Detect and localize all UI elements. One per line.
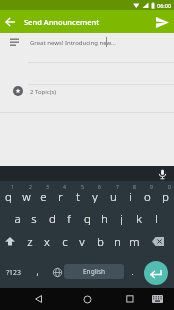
button[interactable]	[144, 261, 168, 285]
button[interactable]: i	[121, 189, 139, 203]
button[interactable]: c	[56, 234, 74, 248]
staticText: h	[101, 211, 108, 225]
staticText: Great news! Introducing new...	[30, 39, 116, 47]
button[interactable]	[0, 33, 174, 60]
staticText: ,	[36, 265, 39, 278]
button[interactable]: y	[86, 189, 104, 203]
staticText: 3	[46, 184, 49, 191]
staticText: 4	[63, 184, 66, 191]
staticText: n	[114, 234, 121, 248]
button[interactable]: k	[130, 211, 148, 225]
button[interactable]: v	[73, 234, 91, 248]
button[interactable]: w	[17, 189, 35, 203]
staticText: q	[5, 189, 12, 203]
button[interactable]	[3, 15, 17, 29]
staticText: j	[120, 211, 123, 225]
staticText: 2 Topic(s)	[30, 88, 57, 96]
button[interactable]	[79, 291, 95, 307]
staticText: 9	[150, 184, 153, 191]
staticText: v	[79, 234, 85, 248]
button[interactable]: l	[147, 211, 165, 225]
button[interactable]: 4	[59, 180, 69, 194]
staticText: 06:00	[157, 2, 172, 9]
button[interactable]: j	[112, 211, 130, 225]
button[interactable]: p	[156, 189, 174, 203]
button[interactable]	[156, 168, 168, 180]
staticText: w	[22, 189, 31, 203]
staticText: a	[14, 211, 21, 225]
button[interactable]	[0, 84, 174, 112]
button[interactable]: 3	[42, 180, 52, 194]
button[interactable]: English	[64, 264, 124, 279]
button[interactable]: b	[91, 234, 109, 248]
button[interactable]: f	[60, 211, 78, 225]
button[interactable]: s	[25, 211, 43, 225]
button[interactable]: 0	[164, 180, 174, 194]
staticText: b	[97, 234, 104, 248]
button[interactable]: 6	[94, 180, 104, 194]
staticText: e	[40, 189, 47, 203]
staticText: y	[92, 189, 98, 203]
staticText: o	[144, 189, 151, 203]
button[interactable]: h	[95, 211, 113, 225]
staticText: Send Announcement	[24, 17, 100, 27]
button[interactable]: ?123	[0, 265, 26, 279]
button[interactable]: 9	[146, 180, 156, 194]
staticText: l	[155, 211, 158, 225]
button[interactable]	[30, 291, 46, 307]
button[interactable]: ,	[28, 264, 46, 278]
staticText: ?123	[6, 268, 21, 277]
staticText: English	[83, 267, 106, 276]
staticText: 1	[11, 184, 14, 191]
button[interactable]: e	[34, 189, 52, 203]
staticText: 7	[116, 184, 119, 191]
staticText: z	[27, 234, 33, 248]
staticText: c	[62, 234, 68, 248]
button[interactable]	[2, 233, 18, 249]
staticText: 6	[98, 184, 101, 191]
staticText: 8	[133, 184, 136, 191]
staticText: 5	[81, 184, 84, 191]
staticText: t	[76, 189, 80, 203]
button[interactable]: o	[138, 189, 156, 203]
button[interactable]: m	[125, 234, 143, 248]
button[interactable]: n	[108, 234, 126, 248]
button[interactable]: 5	[77, 180, 87, 194]
button[interactable]: 8	[129, 180, 139, 194]
button[interactable]: r	[51, 189, 69, 203]
button[interactable]: 1	[7, 180, 17, 194]
button[interactable]	[122, 291, 138, 307]
staticText: g	[84, 211, 91, 225]
staticText: k	[136, 211, 142, 225]
staticText: r	[58, 189, 63, 203]
staticText: m	[129, 234, 140, 248]
button[interactable]: g	[78, 211, 96, 225]
button[interactable]: x	[38, 234, 56, 248]
staticText: f	[67, 211, 71, 225]
button[interactable]: t	[69, 189, 87, 203]
staticText: 0	[168, 184, 171, 191]
staticText: p	[162, 189, 169, 203]
button[interactable]	[150, 233, 166, 249]
staticText: u	[110, 189, 117, 203]
button[interactable]	[149, 292, 165, 306]
button[interactable]	[49, 264, 65, 280]
staticText: .	[131, 265, 134, 278]
staticText: s	[31, 211, 37, 225]
button[interactable]: q	[0, 189, 17, 203]
button[interactable]: 2	[25, 180, 35, 194]
staticText: 2	[29, 184, 32, 191]
button[interactable]: u	[104, 189, 122, 203]
button[interactable]: a	[8, 211, 26, 225]
button[interactable]: 7	[112, 180, 122, 194]
staticText: x	[44, 234, 50, 248]
staticText: d	[49, 211, 56, 225]
button[interactable]: d	[43, 211, 61, 225]
button[interactable]	[154, 14, 170, 30]
button[interactable]: z	[21, 234, 39, 248]
button[interactable]: .	[123, 264, 141, 278]
staticText: i	[129, 189, 132, 203]
